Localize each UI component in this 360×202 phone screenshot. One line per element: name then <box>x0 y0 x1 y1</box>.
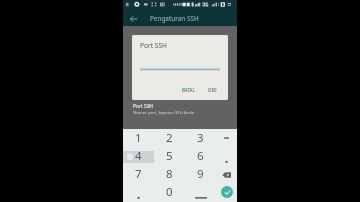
staticText: Port SSH <box>133 103 153 110</box>
staticText: 6 <box>197 148 204 160</box>
staticText: BATAL <box>182 87 195 93</box>
staticText: 2 <box>166 130 173 142</box>
button[interactable]: 1 <box>123 133 154 145</box>
staticText: 4 <box>135 148 142 160</box>
button[interactable]: Backspace <box>216 169 237 181</box>
staticText: Port SSH <box>140 41 167 50</box>
staticText: 9 <box>197 166 204 178</box>
button[interactable]: 0 <box>154 187 185 199</box>
staticText: OKE <box>208 87 217 93</box>
button[interactable]: 2 <box>154 133 185 145</box>
staticText: 7 <box>135 166 142 178</box>
button[interactable]: Port SSH <box>123 100 237 120</box>
button[interactable]: 9 <box>185 169 216 181</box>
button[interactable]: 3 <box>185 133 216 145</box>
button[interactable]: Back <box>125 9 141 26</box>
staticText: 8 <box>166 166 173 178</box>
button[interactable]: 7 <box>123 169 154 181</box>
button[interactable]: 4 <box>123 151 154 163</box>
staticText: 3 <box>197 130 204 142</box>
button[interactable]: 5 <box>154 151 185 163</box>
button[interactable]: BATAL <box>180 84 197 96</box>
button[interactable] <box>216 151 237 163</box>
button[interactable] <box>123 187 154 199</box>
button[interactable]: 8 <box>154 169 185 181</box>
staticText: Pengaturan SSH <box>150 14 199 23</box>
button[interactable]: 6 <box>185 151 216 163</box>
staticText: Nomor port, layanan SSH Anda <box>133 110 195 116</box>
staticText: 5 <box>166 148 173 160</box>
button[interactable]: OKE <box>206 84 219 96</box>
staticText: 1 <box>135 130 142 142</box>
button[interactable] <box>185 187 216 199</box>
staticText: 0 <box>166 184 173 196</box>
button[interactable] <box>216 133 237 145</box>
button[interactable]: Done <box>216 187 237 199</box>
